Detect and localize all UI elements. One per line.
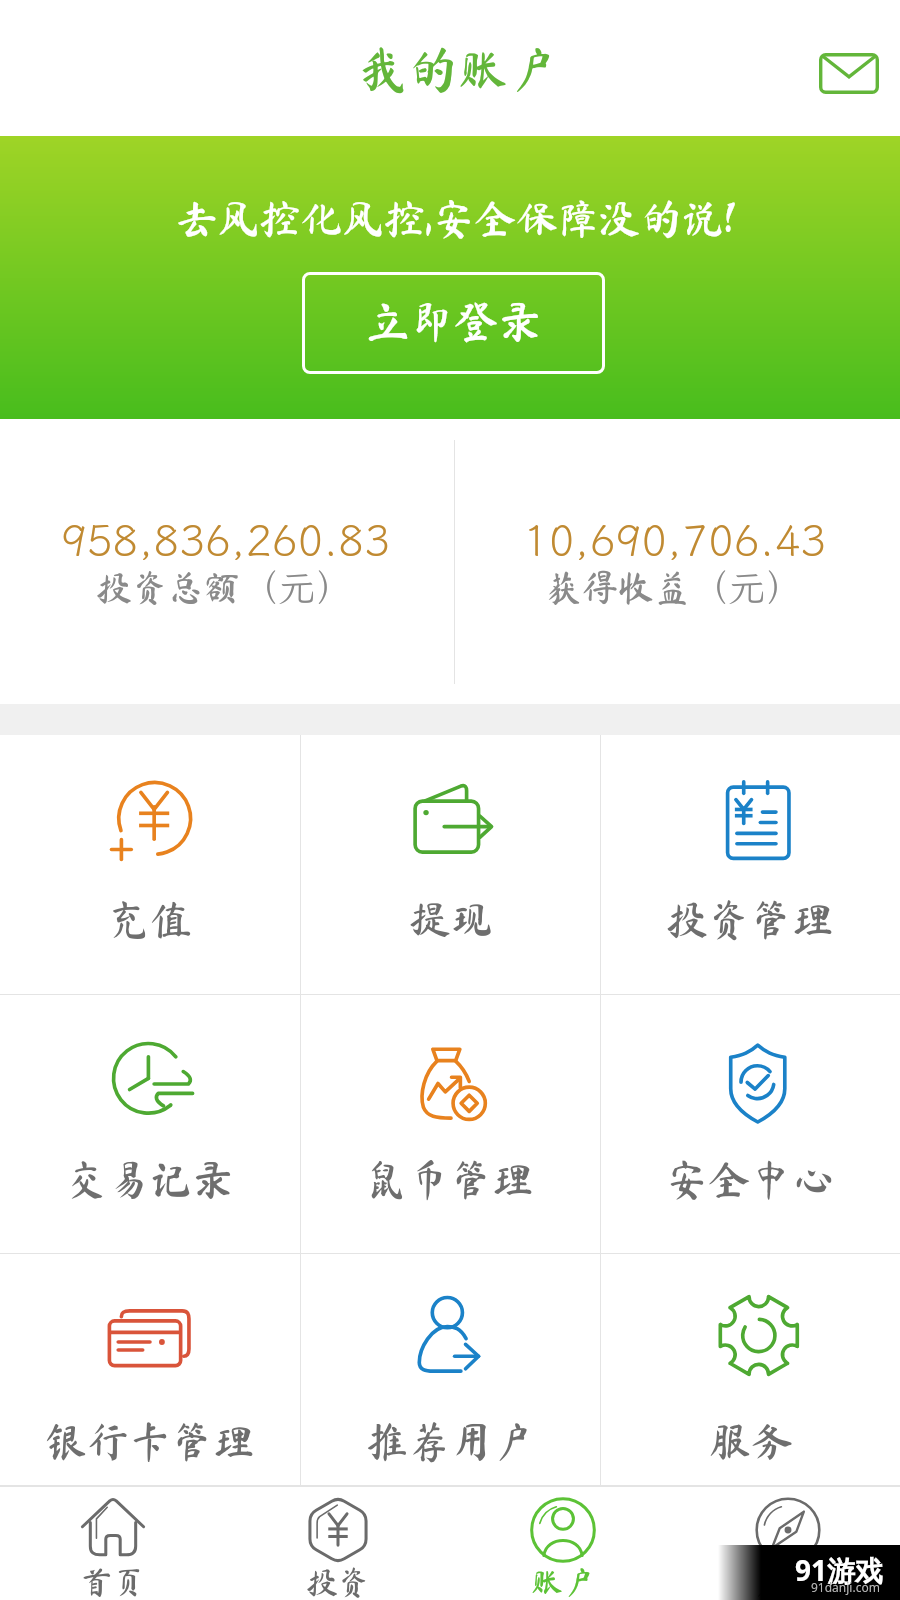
button[interactable]: 鼠币管理 (301, 995, 600, 1253)
button[interactable]: 发现 (675, 1487, 900, 1600)
button[interactable]: 银行卡管理 (0, 1254, 300, 1485)
staticText: 推荐用户 (366, 1420, 535, 1462)
staticText: 我的账户 (358, 44, 558, 94)
button[interactable]: 立即登录 (302, 272, 605, 374)
staticText: 投资管理 (666, 898, 835, 940)
staticText: 10,690,706.43 (523, 512, 827, 569)
staticText: 账户 (531, 1566, 596, 1598)
button[interactable]: 投资管理 (601, 735, 900, 994)
button[interactable]: 首页 (0, 1487, 225, 1600)
staticText: 充值 (108, 898, 193, 940)
staticText: 交易记录 (66, 1158, 235, 1200)
staticText: 获得收益（元） (546, 562, 805, 612)
button[interactable]: 交易记录 (0, 995, 300, 1253)
staticText: 立即登录 (366, 299, 542, 343)
button[interactable]: 安全中心 (601, 995, 900, 1253)
staticText: 91游戏 (795, 1551, 884, 1589)
staticText: 投资总额（元） (96, 562, 355, 612)
staticText: 首页 (81, 1566, 146, 1598)
staticText: 鼠币管理 (366, 1158, 535, 1200)
button[interactable]: 投资 (225, 1487, 450, 1600)
staticText: 958,836,260.83 (61, 512, 390, 569)
staticText: 银行卡管理 (45, 1420, 256, 1462)
staticText: 去风控化风控,安全保障没的说! (176, 197, 734, 239)
staticText: 投资 (306, 1566, 371, 1598)
button[interactable]: 提现 (301, 735, 600, 994)
staticText: 发现 (756, 1566, 821, 1598)
button[interactable]: 推荐用户 (301, 1254, 600, 1485)
staticText: 91danji.com (811, 1579, 880, 1595)
staticText: 提现 (409, 898, 494, 940)
button[interactable]: 账户 (450, 1487, 675, 1600)
staticText: 安全中心 (666, 1158, 835, 1200)
button[interactable]: 充值 (0, 735, 300, 994)
button[interactable]: Messages (805, 29, 893, 117)
staticText: 服务 (709, 1420, 794, 1462)
button[interactable]: 服务 (601, 1254, 900, 1485)
